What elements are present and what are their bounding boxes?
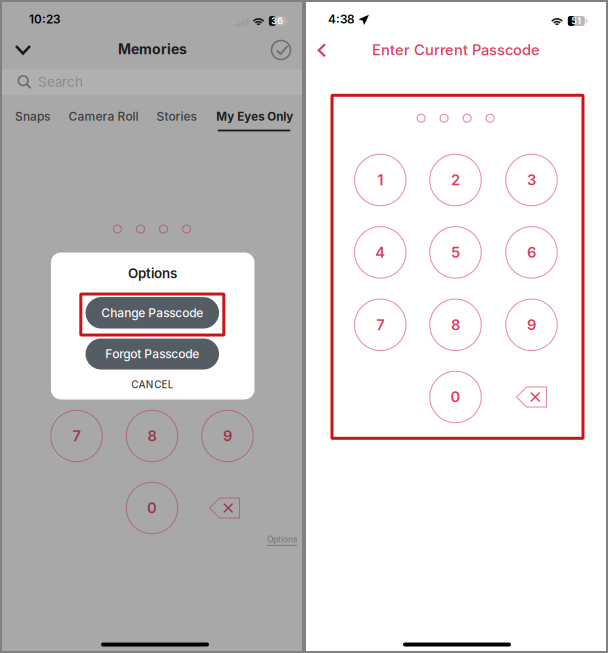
button[interactable]: 0 [430,371,481,423]
staticText: 36 [271,16,283,26]
staticText: Enter Current Passcode [372,41,540,59]
staticText: My Eyes Only [216,109,293,123]
staticText: Options [128,265,177,281]
button[interactable]: CANCEL [97,375,207,393]
staticText: CANCEL [131,378,174,391]
button[interactable]: Delete [201,489,248,526]
staticText: Search [38,74,83,90]
button[interactable]: 6 [506,227,557,278]
staticText: 0 [147,499,157,517]
staticText: Change Passcode [101,305,203,320]
button[interactable]: 0 [126,482,178,534]
staticText: Options [267,534,297,544]
button[interactable]: 9 [202,410,253,462]
staticText: 2 [451,171,460,189]
staticText: 0 [450,388,460,406]
button[interactable]: Delete [508,378,555,415]
staticText: 8 [147,427,156,445]
button[interactable]: 2 [430,154,481,206]
button[interactable]: 5 [430,227,481,278]
staticText: 7 [72,427,80,445]
staticText: 4 [375,243,385,261]
staticText: Memories [118,41,187,58]
button[interactable]: 8 [126,410,178,462]
button[interactable]: 3 [506,154,557,206]
staticText: 9 [527,316,536,334]
button[interactable]: 7 [355,299,406,351]
staticText: 7 [376,316,384,334]
button[interactable]: 7 [51,410,102,462]
staticText: Stories [156,109,196,124]
staticText: 1 [377,171,383,189]
staticText: 3 [527,171,536,189]
staticText: 51 [571,16,581,26]
button[interactable]: Options [265,533,299,546]
staticText: 9 [223,427,232,445]
staticText: Forgot Passcode [105,347,199,361]
button[interactable]: Select memories [267,36,295,64]
staticText: 8 [451,316,460,334]
staticText: Snaps [15,109,50,124]
button[interactable]: Collapse [7,36,39,64]
staticText: 10:23 [29,12,60,26]
staticText: 4:38 [328,12,355,26]
button[interactable]: Back [308,36,336,64]
button[interactable]: 9 [506,299,557,351]
staticText: 6 [527,243,536,261]
button[interactable]: 8 [430,299,481,351]
button[interactable]: Forgot Passcode [86,338,219,369]
button[interactable]: Change Passcode [86,297,219,329]
staticText: Camera Roll [68,109,138,124]
button[interactable]: 1 [355,154,406,206]
staticText: 5 [451,243,460,261]
button[interactable]: 4 [355,227,406,278]
